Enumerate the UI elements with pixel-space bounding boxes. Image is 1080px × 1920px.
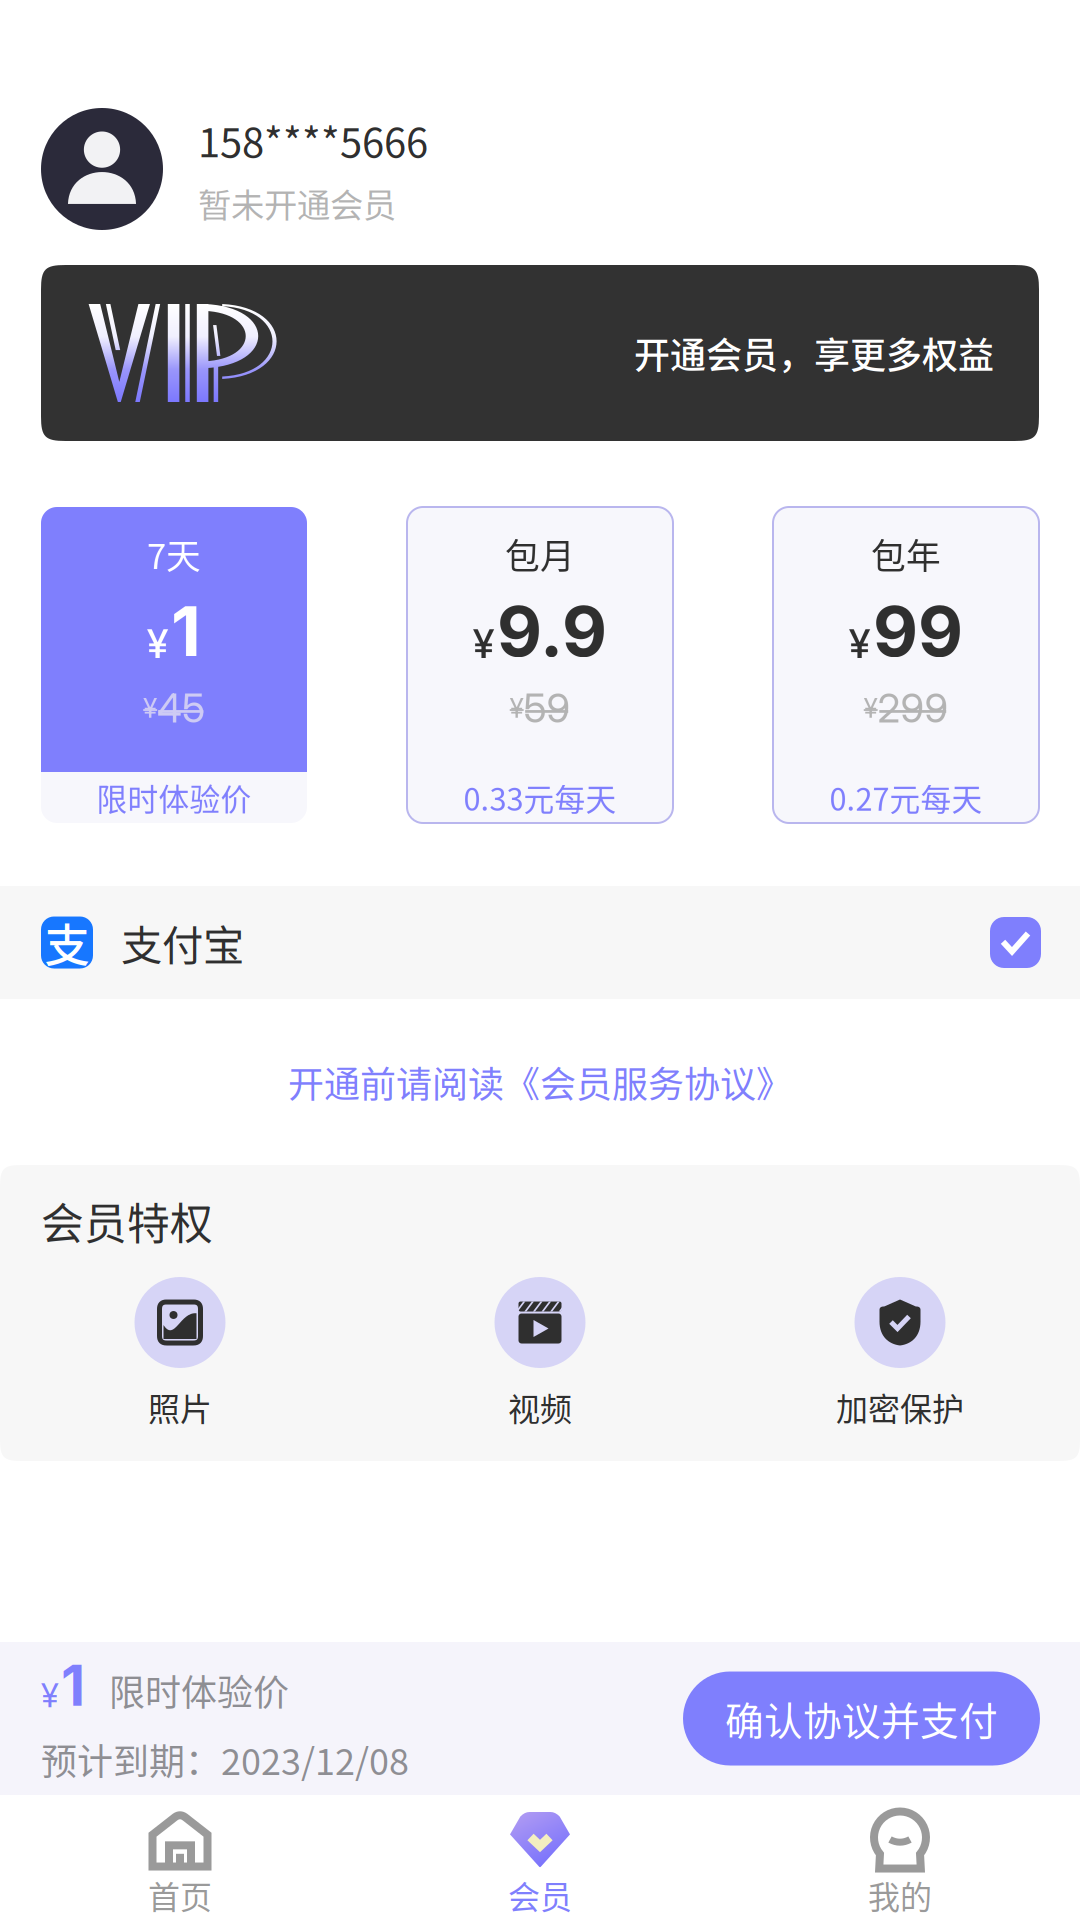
staticText: 0.27元每天 bbox=[829, 775, 982, 820]
staticText: ¥ bbox=[147, 619, 168, 668]
staticText: 加密保护 bbox=[836, 1384, 964, 1430]
staticText: ¥ bbox=[143, 692, 157, 724]
staticText: 照片 bbox=[148, 1384, 212, 1430]
staticText: 9.9 bbox=[497, 589, 607, 673]
staticText: 视频 bbox=[508, 1384, 572, 1430]
staticText: 59 bbox=[523, 684, 570, 732]
staticText: 限时体验价 bbox=[109, 1664, 289, 1716]
staticText: 开通前请阅读《会员服务协议》 bbox=[288, 1056, 792, 1108]
button[interactable]: 包年 bbox=[773, 507, 1039, 823]
button[interactable]: 7天 bbox=[41, 507, 307, 823]
staticText: 支 bbox=[44, 910, 89, 975]
staticText: 99 bbox=[873, 589, 963, 673]
button[interactable]: 支 bbox=[0, 886, 1080, 999]
staticText: 首页 bbox=[148, 1872, 212, 1918]
button[interactable]: 开通前请阅读《会员服务协议》 bbox=[288, 999, 792, 1165]
staticText: ¥ bbox=[849, 619, 870, 668]
staticText: 支付宝 bbox=[121, 913, 244, 972]
staticText: 我的 bbox=[868, 1872, 932, 1918]
staticText: ¥ bbox=[41, 1675, 59, 1715]
button[interactable]: 包月 bbox=[407, 507, 673, 823]
staticText: 包年 bbox=[871, 529, 941, 579]
staticText: 1 bbox=[171, 589, 201, 673]
staticText: 0.33元每天 bbox=[463, 775, 616, 820]
staticText: 会员 bbox=[508, 1872, 572, 1918]
staticText: 45 bbox=[157, 684, 205, 732]
button[interactable]: 我的 bbox=[720, 1811, 1080, 1913]
button[interactable]: 首页 bbox=[0, 1811, 360, 1913]
staticText: ¥ bbox=[509, 692, 523, 724]
staticText: 158****5666 bbox=[198, 111, 428, 169]
staticText: 预计到期：2023/12/08 bbox=[41, 1733, 409, 1785]
button[interactable]: 会员 bbox=[360, 1811, 720, 1913]
staticText: 299 bbox=[877, 684, 948, 732]
button[interactable]: 确认协议并支付 bbox=[683, 1671, 1040, 1765]
staticText: ¥ bbox=[863, 692, 877, 724]
staticText: 会员特权 bbox=[41, 1190, 213, 1252]
staticText: 确认协议并支付 bbox=[725, 1690, 998, 1746]
staticText: ¥ bbox=[473, 619, 494, 668]
staticText: 暂未开通会员 bbox=[198, 179, 396, 227]
staticText: 1 bbox=[61, 1652, 85, 1719]
staticText: 包月 bbox=[505, 529, 575, 579]
staticText: 开通会员，享更多权益 bbox=[634, 327, 994, 379]
staticText: 限时体验价 bbox=[96, 775, 251, 820]
staticText: 7天 bbox=[147, 529, 201, 579]
